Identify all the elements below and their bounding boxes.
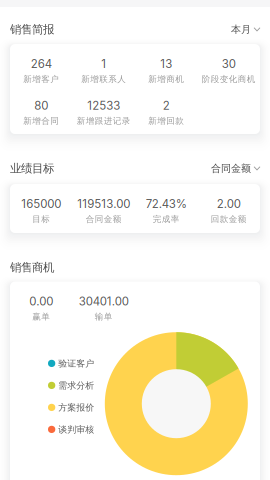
staticText: 新增跟进记录 — [77, 115, 131, 126]
staticText: 72.43% — [146, 197, 187, 211]
staticText: 30 — [222, 57, 236, 71]
staticText: 销售简报 — [10, 22, 54, 37]
staticText: 新增合同 — [23, 115, 59, 126]
staticText: 0.00 — [29, 294, 53, 308]
staticText: 13 — [160, 57, 172, 71]
staticText: 业绩目标 — [10, 161, 54, 176]
staticText: 方案报价 — [58, 402, 94, 413]
staticText: 阶段变化商机 — [202, 74, 256, 85]
staticText: 完成率 — [153, 214, 180, 225]
staticText: 119513.00 — [77, 197, 130, 211]
staticText: 1 — [101, 57, 106, 71]
staticText: 2 — [163, 99, 170, 112]
staticText: 赢单 — [32, 311, 50, 322]
staticText: 新增回款 — [148, 115, 184, 126]
staticText: 需求分析 — [58, 380, 94, 391]
staticText: 264 — [31, 57, 52, 71]
staticText: 输单 — [95, 311, 113, 322]
staticText: 销售商机 — [10, 260, 54, 275]
staticText: 2.00 — [217, 197, 241, 211]
staticText: 验证客户 — [58, 358, 94, 369]
staticText: 合同金额 — [211, 162, 251, 175]
staticText: 合同金额 — [86, 214, 122, 225]
staticText: 新增商机 — [148, 74, 184, 85]
staticText: 165000 — [21, 197, 61, 211]
staticText: 新增客户 — [23, 74, 59, 85]
staticText: 回款金额 — [211, 214, 247, 225]
staticText: 目标 — [32, 214, 50, 225]
staticText: 80 — [34, 99, 48, 112]
staticText: 新增联系人 — [81, 74, 126, 85]
staticText: 30401.00 — [79, 294, 129, 308]
staticText: 12533 — [87, 99, 120, 112]
staticText: 本月 — [231, 23, 251, 36]
button[interactable]: 合同金额 — [211, 162, 260, 175]
button[interactable]: 本月 — [231, 23, 260, 36]
staticText: 谈判审核 — [58, 424, 94, 435]
